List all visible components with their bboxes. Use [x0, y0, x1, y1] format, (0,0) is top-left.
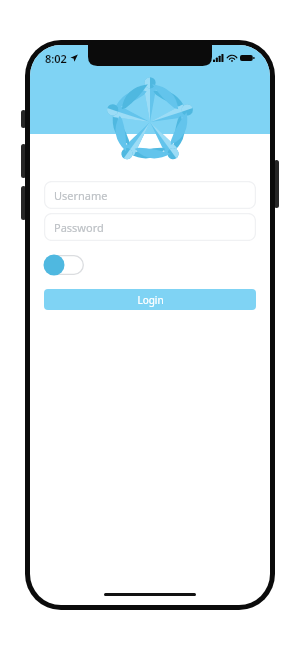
staticText: Login — [137, 293, 164, 307]
button[interactable]: Login — [44, 289, 256, 310]
button[interactable]: Password — [44, 213, 256, 241]
staticText: 8:02 — [45, 51, 67, 66]
button[interactable]: Remember me toggle — [44, 255, 84, 275]
button[interactable]: Username — [44, 181, 256, 209]
staticText: Username — [54, 188, 108, 203]
staticText: Password — [54, 220, 104, 235]
